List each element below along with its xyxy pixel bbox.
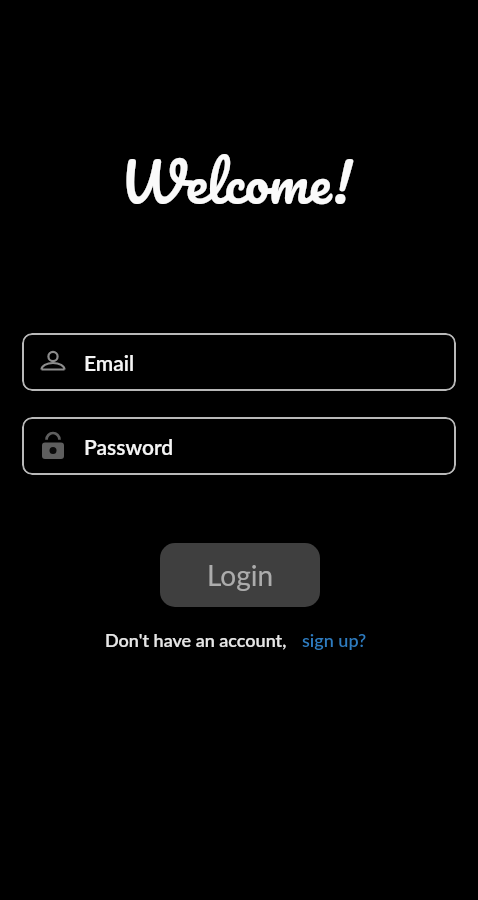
button[interactable]: sign up? <box>302 629 367 651</box>
staticText: Don't have an account, <box>105 629 287 651</box>
button[interactable]: Email <box>22 333 456 391</box>
staticText: Password <box>84 434 174 459</box>
button[interactable]: Password <box>22 417 456 475</box>
staticText: Welcome! <box>120 134 352 229</box>
button[interactable]: Login <box>160 543 320 607</box>
staticText: Email <box>84 350 135 375</box>
staticText: Login <box>207 558 274 592</box>
